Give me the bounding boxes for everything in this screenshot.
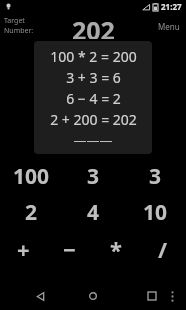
button[interactable]: 3 — [124, 162, 186, 188]
staticText: * — [110, 234, 122, 262]
staticText: 6 − 4 = 2 — [66, 89, 121, 108]
staticText: Target — [4, 16, 25, 26]
button[interactable]: 100 — [0, 162, 62, 188]
button[interactable]: Menu — [152, 17, 186, 36]
staticText: 2 + 200 = 202 — [50, 110, 137, 129]
staticText: 21:27 — [161, 1, 182, 12]
staticText: / — [158, 234, 168, 262]
button[interactable]: 4 — [62, 198, 124, 224]
staticText: Number: — [4, 26, 34, 36]
staticText: + — [17, 234, 30, 262]
staticText: 3 — [87, 162, 100, 188]
button[interactable]: 3 — [62, 162, 124, 188]
staticText: 2 — [25, 198, 38, 224]
button[interactable]: + — [0, 234, 46, 262]
staticText: 4 — [87, 198, 100, 224]
button[interactable]: 10 — [124, 198, 186, 224]
button[interactable]: / — [139, 234, 186, 262]
staticText: 100 * 2 = 200 — [50, 47, 137, 66]
staticText: 100 — [13, 162, 50, 188]
button[interactable]: Back — [30, 286, 50, 306]
staticText: 3 + 3 = 6 — [66, 68, 121, 87]
button[interactable]: * — [92, 234, 139, 262]
button[interactable]: Home — [83, 286, 103, 306]
staticText: 10 — [143, 198, 168, 224]
staticText: 202 — [72, 13, 115, 39]
button[interactable]: 100 * 2 = 200 — [34, 41, 152, 154]
button[interactable]: − — [46, 234, 92, 262]
staticText: − — [63, 234, 76, 262]
staticText: Menu — [158, 21, 180, 32]
button[interactable]: More options — [164, 288, 180, 304]
staticText: 3 — [149, 162, 162, 188]
button[interactable]: 2 — [0, 198, 62, 224]
staticText: ——— — [73, 131, 113, 149]
button[interactable]: Recent apps — [142, 286, 162, 306]
